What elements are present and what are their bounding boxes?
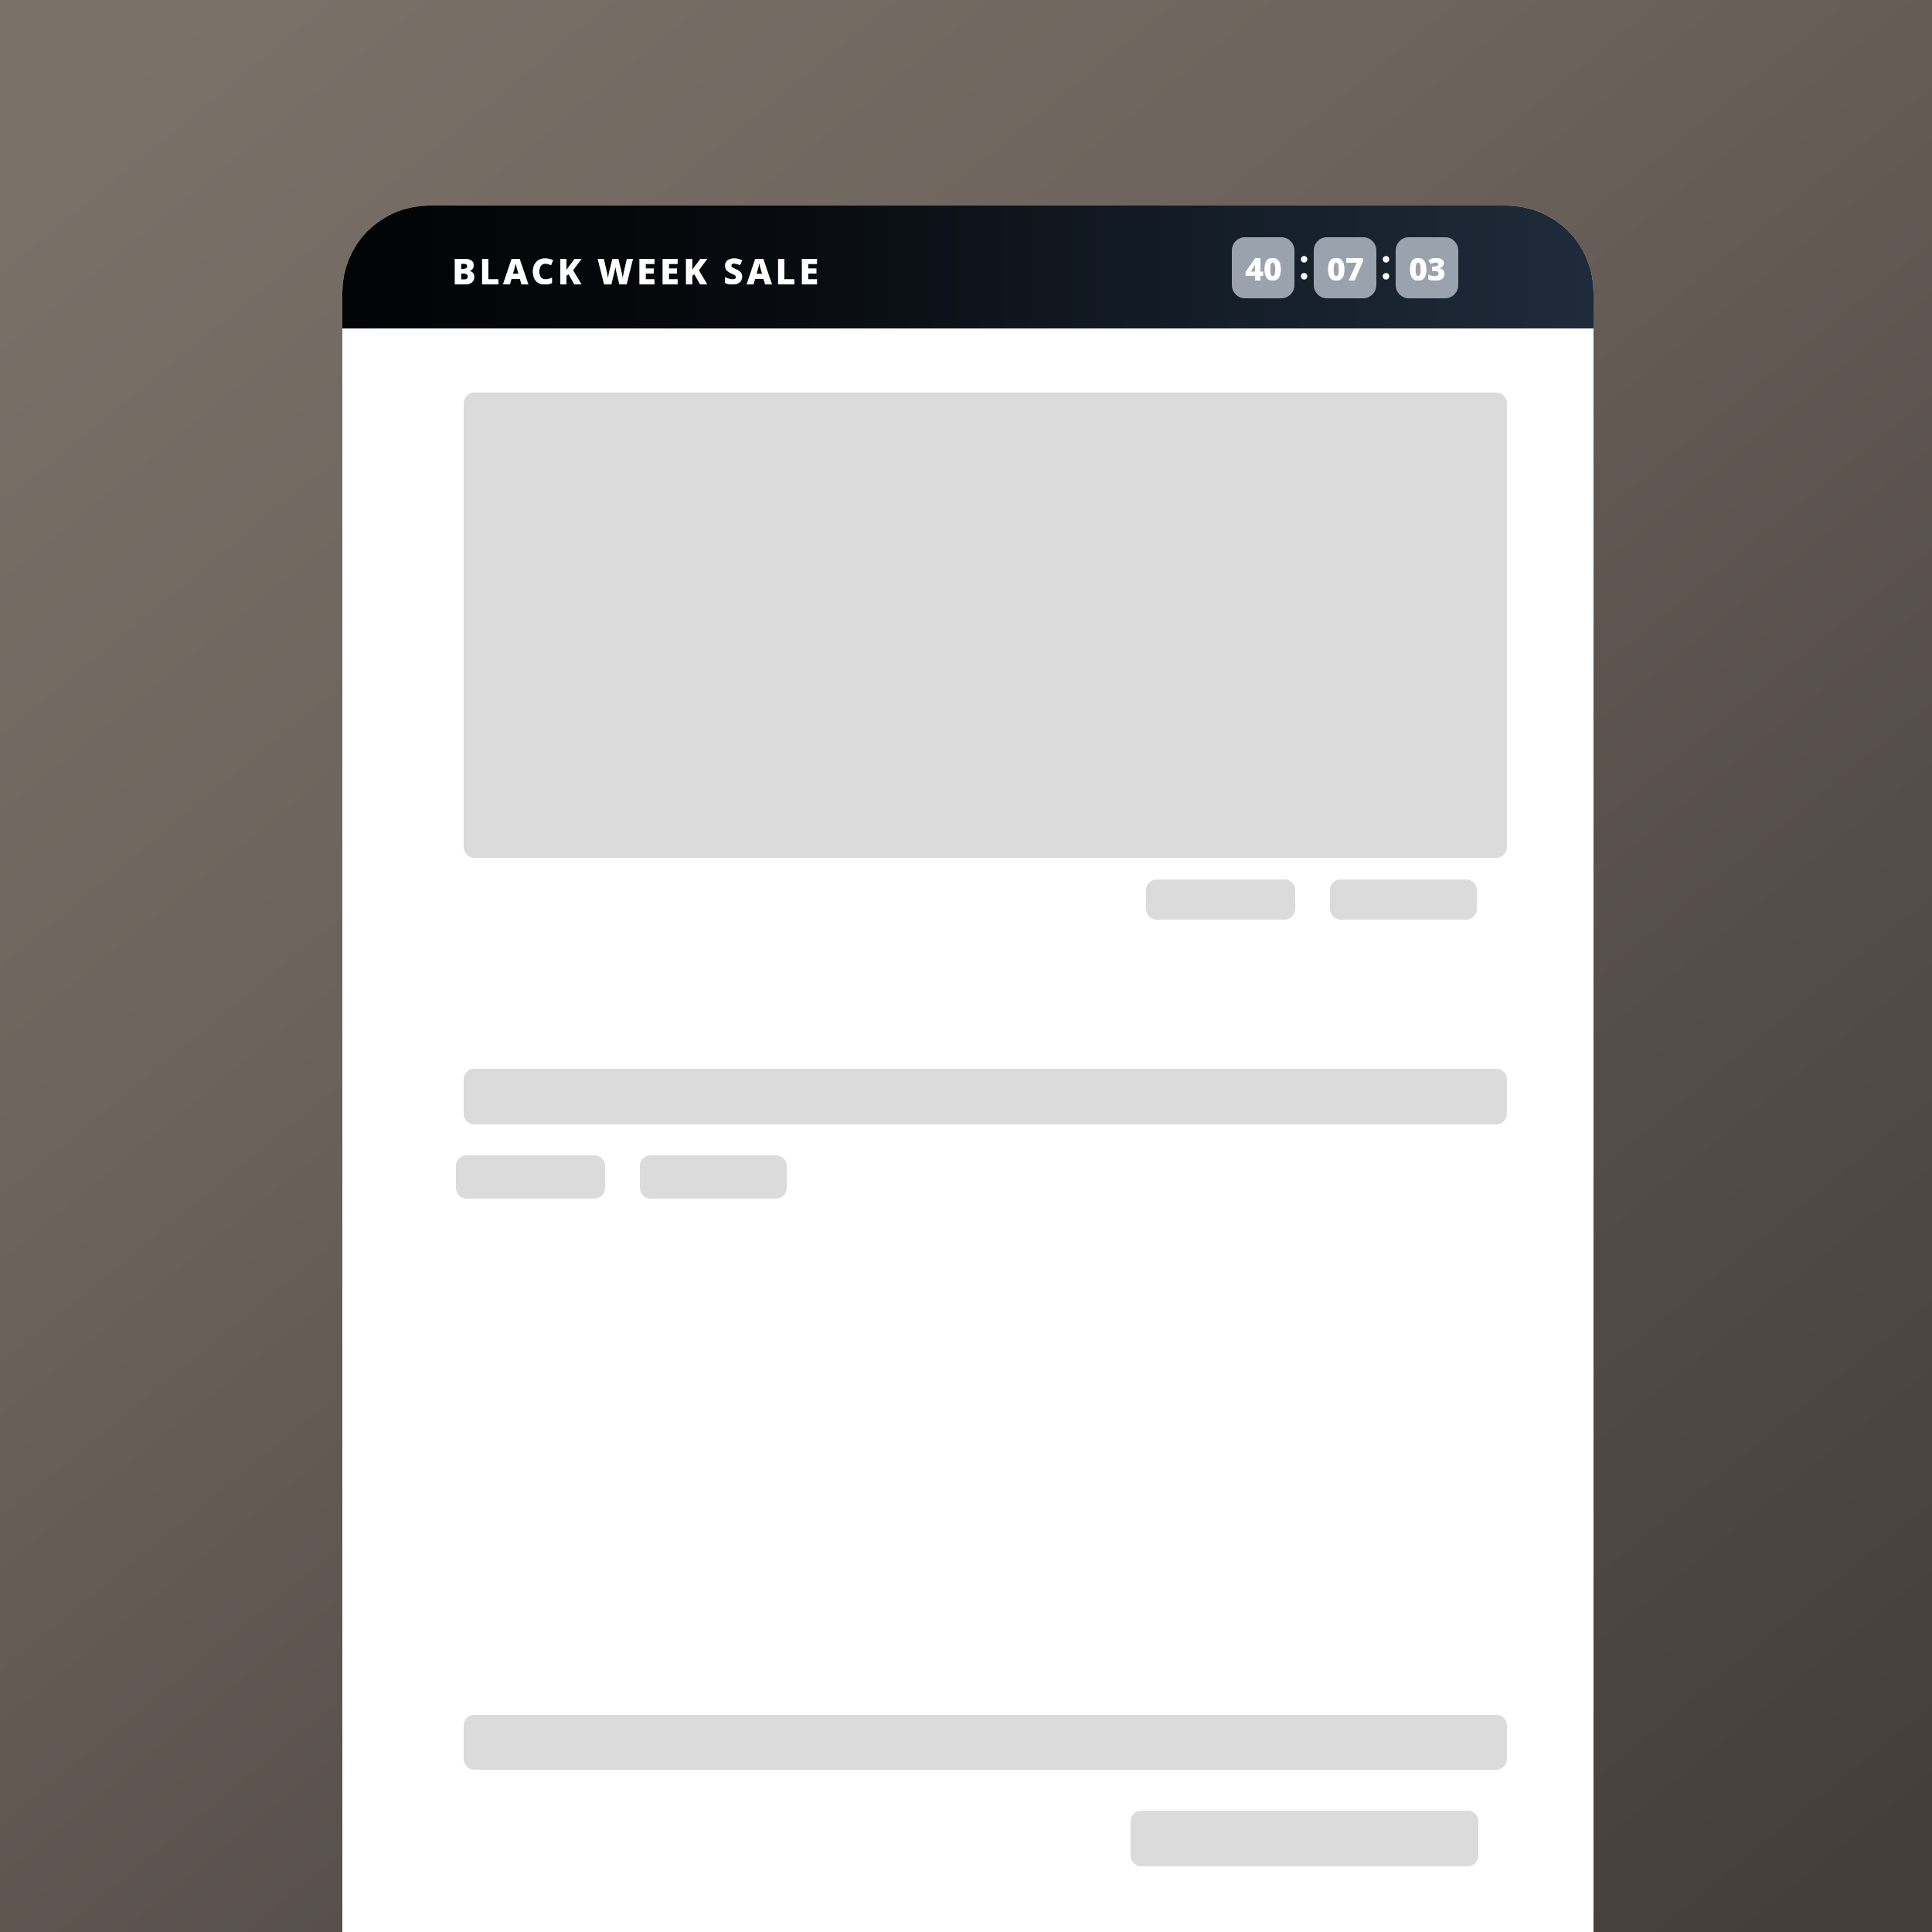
staticText: 07 bbox=[1327, 247, 1364, 290]
staticText: 40 bbox=[1245, 247, 1282, 290]
button[interactable]: Countdown 40 hours 07 minutes 03 seconds bbox=[1232, 237, 1458, 298]
button[interactable]: BLACK WEEK SALE bbox=[452, 247, 823, 295]
staticText: 03 bbox=[1409, 247, 1446, 290]
staticText: BLACK WEEK SALE bbox=[452, 247, 823, 295]
